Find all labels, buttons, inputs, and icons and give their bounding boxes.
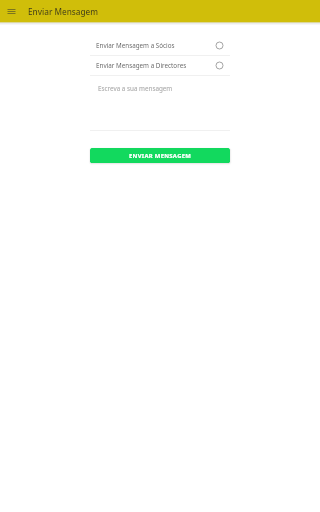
staticText: Enviar Mensagem a Sócios [96, 41, 215, 50]
button[interactable]: ENVIAR MENSAGEM [90, 148, 230, 163]
button[interactable]: Enviar Mensagem a Sócios [90, 36, 230, 55]
staticText: Enviar Mensagem a Directores [96, 61, 215, 70]
staticText: ENVIAR MENSAGEM [129, 152, 192, 160]
staticText: Escreva a sua mensagem [98, 84, 173, 93]
button[interactable]: Enviar Mensagem a Directores [90, 56, 230, 75]
button[interactable]: Open navigation menu [3, 3, 20, 20]
staticText: Enviar Mensagem [28, 6, 99, 17]
button[interactable]: Escreva a sua mensagem [98, 84, 230, 93]
